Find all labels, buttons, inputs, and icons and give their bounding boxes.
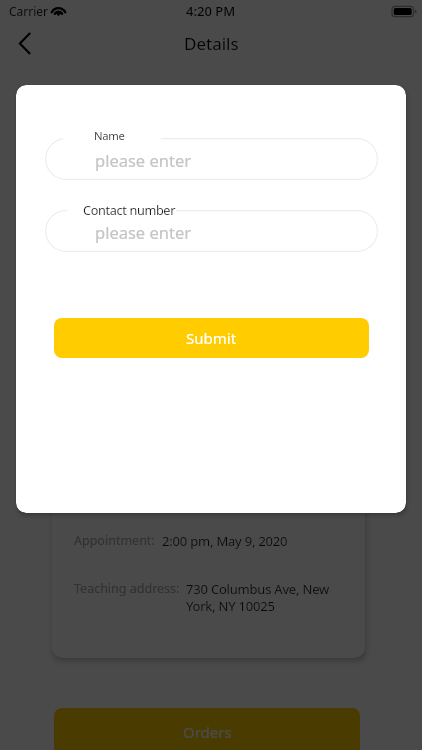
button[interactable]: Submit [54,318,369,358]
button[interactable]: Orders [54,708,360,750]
staticText: Carrier [9,3,49,19]
staticText: please enter [95,221,192,243]
staticText: please enter [95,149,192,171]
staticText: Details [184,32,239,55]
staticText: Appointment: [74,532,155,549]
staticText: 4:20 PM [186,2,236,20]
staticText: 2:00 pm, May 9, 2020 [162,532,288,550]
staticText: Contact number [83,201,176,218]
staticText: Orders [183,722,232,742]
staticText: Submit [186,328,237,348]
staticText: 730 Columbus Ave, New York, NY 10025 [186,580,330,615]
staticText: Teaching address: [74,580,180,597]
button[interactable]: Back [0,22,44,66]
staticText: Name [94,128,125,143]
